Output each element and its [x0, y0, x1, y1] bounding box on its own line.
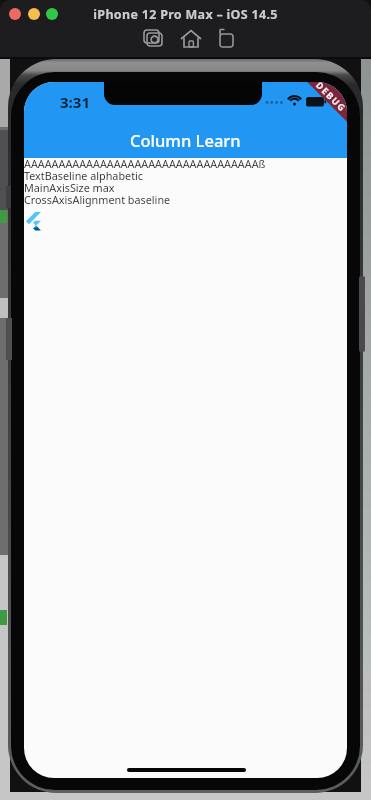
staticText: Column Learn — [130, 129, 241, 151]
button[interactable] — [46, 8, 58, 20]
button[interactable] — [214, 27, 240, 51]
staticText: AAAAAAAAAAAAAAAAAAAAAAAAAAAAAAAAAAß — [24, 156, 266, 171]
button[interactable] — [140, 27, 166, 51]
staticText: iPhone 12 Pro Max – iOS 14.5 — [93, 6, 278, 23]
button[interactable] — [9, 8, 21, 20]
staticText: TextBaseline alphabetic — [24, 168, 144, 183]
staticText: 3:31 — [60, 92, 90, 108]
staticText: MainAxisSize max — [24, 180, 115, 195]
staticText: CrossAxisAlignment baseline — [24, 192, 171, 207]
button[interactable] — [28, 8, 40, 20]
button[interactable] — [178, 27, 204, 51]
staticText: DEBUG — [314, 82, 347, 114]
